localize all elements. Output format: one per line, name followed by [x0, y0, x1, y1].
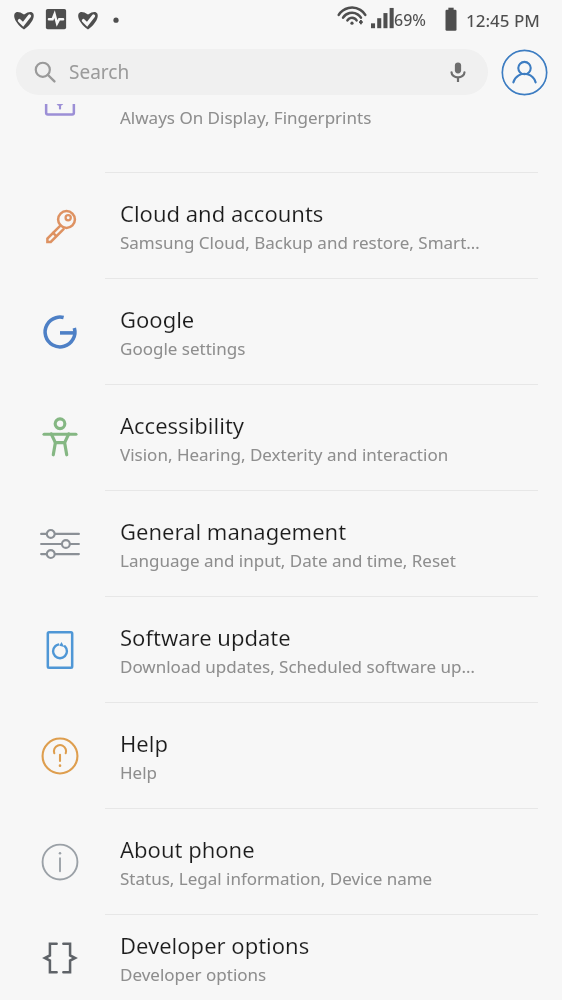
button[interactable]: Accessibility: [0, 385, 562, 490]
button[interactable]: Lock screen and security: [0, 104, 562, 135]
button[interactable]: Cloud and accounts: [0, 173, 562, 278]
other: Voice search: [446, 60, 470, 84]
staticText: Google: [120, 304, 195, 334]
staticText: Status, Legal information, Device name: [120, 867, 433, 890]
staticText: Samsung Cloud, Backup and restore, Smart…: [120, 231, 480, 254]
staticText: Developer options: [120, 963, 267, 986]
button[interactable]: Developer options: [0, 915, 562, 1000]
staticText: Help: [120, 761, 158, 784]
staticText: Download updates, Scheduled software up…: [120, 655, 475, 678]
staticText: 69%: [394, 9, 426, 31]
button[interactable]: About phone: [0, 809, 562, 914]
button[interactable]: Software update: [0, 597, 562, 702]
button[interactable]: Search: [16, 49, 488, 95]
staticText: Google settings: [120, 337, 246, 360]
button[interactable]: Google: [0, 279, 562, 384]
staticText: Software update: [120, 622, 291, 652]
staticText: Help: [120, 728, 168, 758]
button[interactable]: General management: [0, 491, 562, 596]
staticText: Vision, Hearing, Dexterity and interacti…: [120, 443, 449, 466]
staticText: Always On Display, Fingerprints: [120, 106, 372, 129]
staticText: Accessibility: [120, 410, 245, 440]
button[interactable]: Account: [501, 49, 548, 96]
staticText: Language and input, Date and time, Reset: [120, 549, 456, 572]
staticText: Cloud and accounts: [120, 198, 324, 228]
staticText: 12:45 PM: [466, 9, 540, 32]
button[interactable]: Help: [0, 703, 562, 808]
staticText: General management: [120, 516, 347, 546]
staticText: Search: [69, 59, 446, 85]
staticText: Developer options: [120, 930, 310, 960]
staticText: About phone: [120, 834, 255, 864]
